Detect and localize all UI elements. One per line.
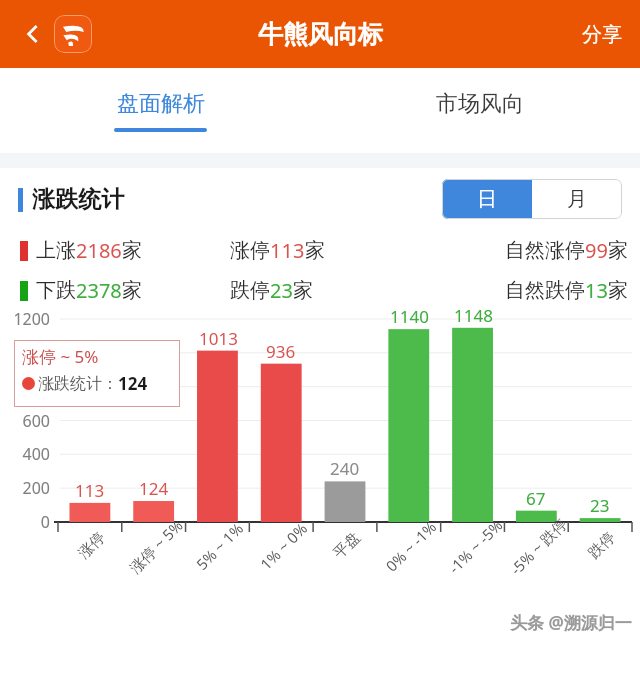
button[interactable]: 涨停 ~ 5% [14,340,180,407]
staticText: 113 [75,479,105,502]
staticText: 13 [585,277,608,304]
staticText: 头条 @溯源归一 [510,611,632,634]
staticText: 240 [330,457,360,480]
staticText: 涨跌统计： [38,374,118,394]
staticText: 2378 [76,277,122,304]
staticText: 936 [266,340,296,363]
staticText: 涨停 ~ 5% [125,515,187,577]
button[interactable]: 月 [532,179,622,219]
staticText: 分享 [582,22,622,47]
staticText: 平盘 [330,528,364,563]
staticText: 200 [22,477,50,499]
staticText: -1% ~ -5% [444,514,507,577]
staticText: 家 [608,278,628,303]
staticText: 日 [477,187,497,212]
staticText: 0% ~ -1% [381,516,441,576]
button[interactable]: 分享 [564,12,640,57]
staticText: 家 [293,278,313,303]
staticText: 1% ~ 0% [256,518,311,574]
staticText: 涨停 ~ 5% [22,345,99,368]
staticText: 市场风向 [436,90,524,118]
staticText: 600 [22,410,50,432]
staticText: 家 [122,238,142,263]
staticText: 23 [270,277,293,304]
staticText: 跌停 [230,278,270,303]
staticText: 家 [305,238,325,263]
staticText: -5% ~ 跌停 [506,513,571,579]
staticText: 上涨 [36,238,76,263]
button[interactable]: 盘面解析 [0,68,320,132]
staticText: 124 [118,372,148,395]
staticText: 涨停 [230,238,270,263]
staticText: 99 [585,237,608,264]
button[interactable]: 日 [442,179,532,219]
staticText: 1200 [13,308,50,330]
staticText: 家 [608,238,628,263]
staticText: 23 [590,494,610,517]
staticText: 2186 [76,237,122,264]
staticText: 月 [567,187,587,212]
button[interactable]: 市场风向 [320,68,640,132]
staticText: 盘面解析 [117,90,205,118]
staticText: 113 [270,237,305,264]
button[interactable]: App logo [52,13,94,55]
staticText: 自然跌停 [505,278,585,303]
staticText: 家 [122,278,142,303]
staticText: 0 [40,511,50,533]
staticText: 1013 [199,327,238,350]
staticText: 124 [139,477,169,500]
staticText: 下跌 [36,278,76,303]
staticText: 涨停 [75,528,109,563]
staticText: 1148 [454,304,493,327]
staticText: 67 [526,487,546,510]
staticText: 自然涨停 [505,238,585,263]
staticText: 1140 [390,305,429,328]
staticText: 涨跌统计 [32,185,124,214]
staticText: 牛熊风向标 [258,19,383,50]
staticText: 5% ~ 1% [192,518,247,574]
staticText: 跌停 [585,528,619,563]
staticText: 400 [22,443,50,465]
button[interactable]: Back [14,15,52,53]
